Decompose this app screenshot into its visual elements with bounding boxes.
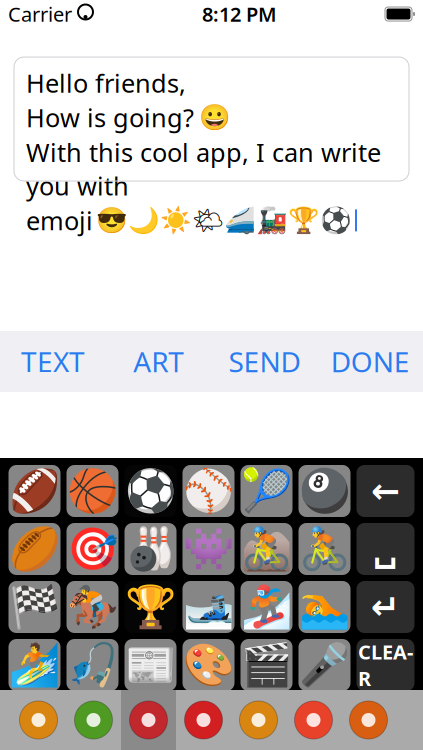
staticText: SEND bbox=[228, 343, 300, 380]
button[interactable]: 🎣 bbox=[66, 639, 118, 691]
staticText: ⚽️ bbox=[125, 467, 176, 515]
button[interactable]: 🎿 bbox=[182, 581, 234, 633]
staticText: 🏇 bbox=[67, 583, 118, 631]
staticText: 🏀 bbox=[67, 467, 118, 515]
staticText: Hello friends, bbox=[26, 66, 186, 100]
button[interactable]: Category 4 bbox=[176, 690, 231, 750]
staticText: ⚾️ bbox=[183, 467, 234, 515]
staticText: 🎤 bbox=[299, 641, 350, 689]
button[interactable]: 🏇 bbox=[66, 581, 118, 633]
staticText: 🏉 bbox=[9, 525, 60, 573]
staticText: DONE bbox=[331, 343, 410, 380]
button[interactable]: Category 2 bbox=[66, 690, 121, 750]
button[interactable]: 🏊 bbox=[298, 581, 350, 633]
button[interactable]: 🏉 bbox=[8, 523, 60, 575]
button[interactable]: SEND bbox=[211, 331, 317, 392]
button[interactable]: 🚵 bbox=[240, 523, 292, 575]
button[interactable]: 🎨 bbox=[182, 639, 234, 691]
button[interactable]: 🏀 bbox=[66, 465, 118, 517]
staticText: 🎱 bbox=[299, 467, 350, 515]
button[interactable]: 🎤 bbox=[298, 639, 350, 691]
staticText: With this cool app, I can write you with bbox=[26, 135, 381, 203]
button[interactable]: Category 6 bbox=[286, 690, 341, 750]
staticText: 😀 bbox=[199, 103, 231, 132]
staticText: 8:12 PM bbox=[202, 1, 277, 27]
button[interactable]: 🎾 bbox=[240, 465, 292, 517]
button[interactable]: ⚽️ bbox=[124, 465, 176, 517]
staticText: 🏄 bbox=[9, 641, 60, 689]
staticText: 🚴 bbox=[299, 525, 350, 573]
button[interactable]: DONE bbox=[317, 331, 423, 392]
button[interactable]: 📰 bbox=[124, 639, 176, 691]
button[interactable]: TEXT bbox=[0, 331, 106, 392]
button[interactable]: 🏂 bbox=[240, 581, 292, 633]
button[interactable]: Category 7 bbox=[341, 690, 396, 750]
button[interactable]: 🏄 bbox=[8, 639, 60, 691]
staticText: 👾 bbox=[183, 525, 234, 573]
staticText: 🏂 bbox=[241, 583, 292, 631]
button[interactable]: 🏆 bbox=[124, 581, 176, 633]
button[interactable]: Category 3 bbox=[121, 690, 176, 750]
staticText: ␣ bbox=[373, 529, 398, 569]
button[interactable]: Category 5 bbox=[231, 690, 286, 750]
button[interactable]: ⚾️ bbox=[182, 465, 234, 517]
staticText: 🚵 bbox=[241, 525, 292, 573]
button[interactable]: 🎱 bbox=[298, 465, 350, 517]
button[interactable]: 🎬 bbox=[240, 639, 292, 691]
button[interactable]: Return bbox=[356, 581, 414, 633]
button[interactable]: Clear bbox=[356, 639, 414, 691]
staticText: Carrier bbox=[8, 1, 72, 27]
button[interactable]: 🎯 bbox=[66, 523, 118, 575]
staticText: ← bbox=[371, 471, 400, 511]
button[interactable]: 🚴 bbox=[298, 523, 350, 575]
button[interactable]: Space bbox=[356, 523, 414, 575]
staticText: 🎣 bbox=[67, 641, 118, 689]
staticText: ART bbox=[133, 343, 184, 380]
staticText: How is going? bbox=[26, 101, 194, 134]
staticText: 🎳 bbox=[125, 525, 176, 573]
staticText: 🎾 bbox=[241, 467, 292, 515]
staticText: 🎨 bbox=[183, 641, 234, 689]
staticText: CLEAR bbox=[358, 638, 413, 691]
staticText: 📰 bbox=[125, 641, 176, 689]
button[interactable]: 👾 bbox=[182, 523, 234, 575]
button[interactable]: 🏈 bbox=[8, 465, 60, 517]
staticText: TEXT bbox=[21, 343, 85, 380]
button[interactable]: Delete bbox=[356, 465, 414, 517]
staticText: 🏈 bbox=[9, 467, 60, 515]
staticText: 🏊 bbox=[299, 583, 350, 631]
button[interactable]: ART bbox=[106, 331, 212, 392]
staticText: 😎🌙☀️🌤🚄🚂🏆⚽️ bbox=[96, 206, 352, 235]
button[interactable]: 🎳 bbox=[124, 523, 176, 575]
staticText: 🎬 bbox=[241, 641, 292, 689]
staticText: 🏆 bbox=[125, 583, 176, 631]
staticText: 🎿 bbox=[183, 583, 234, 631]
button[interactable]: Category 1 bbox=[11, 690, 66, 750]
staticText: ↵ bbox=[371, 587, 400, 627]
button[interactable]: 🏁 bbox=[8, 581, 60, 633]
staticText: 🏁 bbox=[9, 583, 60, 631]
staticText: emoji bbox=[26, 204, 93, 237]
staticText: 🎯 bbox=[67, 525, 118, 573]
